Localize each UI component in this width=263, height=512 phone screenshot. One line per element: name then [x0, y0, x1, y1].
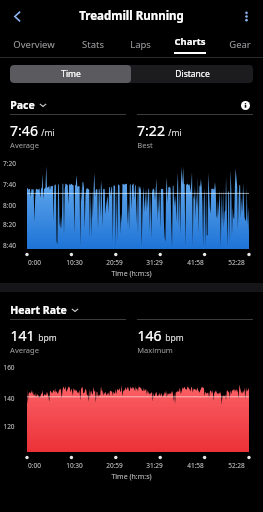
- staticText: 140: [3, 394, 15, 403]
- staticText: Treadmill Running: [79, 8, 184, 24]
- button[interactable]: Gear: [217, 31, 263, 58]
- button[interactable]: Info: [237, 97, 253, 113]
- staticText: 10:30: [66, 461, 83, 470]
- staticText: /mi: [41, 127, 55, 139]
- staticText: 120: [3, 422, 15, 431]
- button[interactable]: Charts: [163, 31, 217, 58]
- staticText: 7:40: [3, 180, 16, 189]
- staticText: Overview: [13, 38, 55, 51]
- staticText: Distance: [175, 68, 210, 80]
- staticText: 0:00: [28, 258, 41, 267]
- staticText: 8:40: [3, 241, 16, 250]
- staticText: 41:58: [187, 258, 204, 267]
- staticText: Charts: [174, 35, 206, 48]
- staticText: Best: [137, 140, 153, 150]
- staticText: 41:58: [187, 461, 204, 470]
- button[interactable]: 7:22: [137, 114, 253, 150]
- button[interactable]: 146: [137, 319, 253, 355]
- staticText: Average: [10, 140, 39, 150]
- staticText: 52:28: [228, 258, 245, 267]
- staticText: 8:00: [3, 201, 16, 210]
- button[interactable]: Stats: [68, 31, 117, 58]
- staticText: Time (h:m:s): [111, 269, 152, 279]
- staticText: 0:00: [28, 461, 41, 470]
- button[interactable]: Overview: [0, 31, 68, 58]
- staticText: 160: [3, 363, 15, 372]
- staticText: 31:29: [146, 461, 163, 470]
- staticText: Time (h:m:s): [111, 472, 152, 482]
- staticText: Heart Rate: [10, 303, 67, 317]
- staticText: 20:59: [106, 461, 123, 470]
- button[interactable]: 141: [10, 319, 126, 355]
- button[interactable]: Laps: [117, 31, 163, 58]
- staticText: 31:29: [146, 258, 163, 267]
- staticText: Gear: [229, 38, 251, 51]
- button[interactable]: Back: [3, 2, 31, 30]
- button[interactable]: More options: [233, 3, 259, 29]
- staticText: 20:59: [106, 258, 123, 267]
- staticText: bpm: [165, 332, 184, 344]
- button[interactable]: 7:46: [10, 114, 126, 150]
- staticText: 7:20: [3, 159, 16, 168]
- staticText: 146: [137, 326, 162, 345]
- staticText: bpm: [38, 332, 57, 344]
- staticText: 52:28: [228, 461, 245, 470]
- staticText: 7:46: [10, 121, 38, 140]
- staticText: Pace: [10, 98, 35, 112]
- staticText: Average: [10, 345, 39, 355]
- staticText: /mi: [168, 127, 182, 139]
- staticText: 8:20: [3, 220, 16, 229]
- staticText: 7:22: [137, 121, 165, 140]
- staticText: 10:30: [66, 258, 83, 267]
- staticText: Maximum: [137, 345, 173, 355]
- button[interactable]: Time: [10, 65, 131, 83]
- staticText: Time: [61, 68, 81, 80]
- button[interactable]: Pace: [10, 98, 47, 112]
- staticText: 141: [10, 326, 35, 345]
- button[interactable]: Distance: [131, 65, 253, 83]
- staticText: Stats: [82, 38, 104, 51]
- button[interactable]: Heart Rate: [10, 303, 79, 317]
- staticText: Laps: [130, 38, 151, 51]
